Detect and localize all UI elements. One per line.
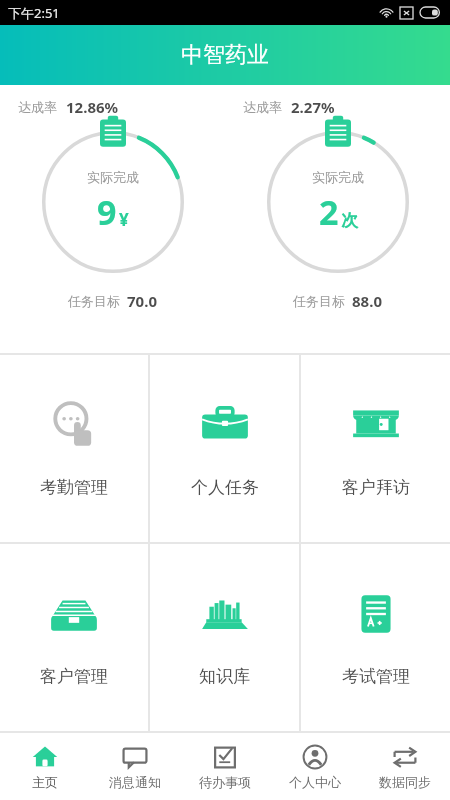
staticText: 实际完成 (312, 169, 364, 185)
staticText: 个人中心 (289, 774, 341, 790)
staticText: 12.86% (66, 97, 119, 117)
button[interactable]: 主页 (0, 733, 90, 800)
staticText: 主页 (32, 774, 58, 790)
staticText: 70.0 (127, 291, 157, 311)
staticText: 个人任务 (191, 477, 259, 498)
staticText: 客户管理 (40, 666, 108, 687)
staticText: 9 (97, 189, 117, 235)
staticText: 2.27% (291, 97, 335, 117)
staticText: 88.0 (352, 291, 382, 311)
staticText: 下午2:51 (8, 4, 60, 22)
button[interactable]: 个人任务 (150, 355, 299, 542)
staticText: ¥ (119, 208, 129, 231)
staticText: 客户拜访 (342, 477, 410, 498)
button[interactable]: 考勤管理 (0, 355, 148, 542)
staticText: 知识库 (199, 666, 250, 687)
staticText: 待办事项 (199, 774, 251, 790)
button[interactable]: 个人中心 (270, 733, 360, 800)
button[interactable]: 消息通知 (90, 733, 180, 800)
button[interactable]: 考试管理 (301, 544, 450, 731)
button[interactable]: 知识库 (150, 544, 299, 731)
staticText: 任务目标 (68, 293, 120, 309)
button[interactable]: 客户管理 (0, 544, 148, 731)
staticText: 实际完成 (87, 169, 139, 185)
staticText: 数据同步 (379, 774, 431, 790)
staticText: 考勤管理 (40, 477, 108, 498)
staticText: 任务目标 (293, 293, 345, 309)
staticText: 达成率 (18, 99, 57, 115)
staticText: 考试管理 (342, 666, 410, 687)
staticText: 次 (341, 210, 358, 231)
button[interactable]: 数据同步 (360, 733, 450, 800)
staticText: 中智药业 (181, 41, 269, 69)
button[interactable]: 待办事项 (180, 733, 270, 800)
staticText: 2 (319, 189, 339, 235)
staticText: 达成率 (243, 99, 282, 115)
button[interactable]: 客户拜访 (301, 355, 450, 542)
staticText: 消息通知 (109, 774, 161, 790)
